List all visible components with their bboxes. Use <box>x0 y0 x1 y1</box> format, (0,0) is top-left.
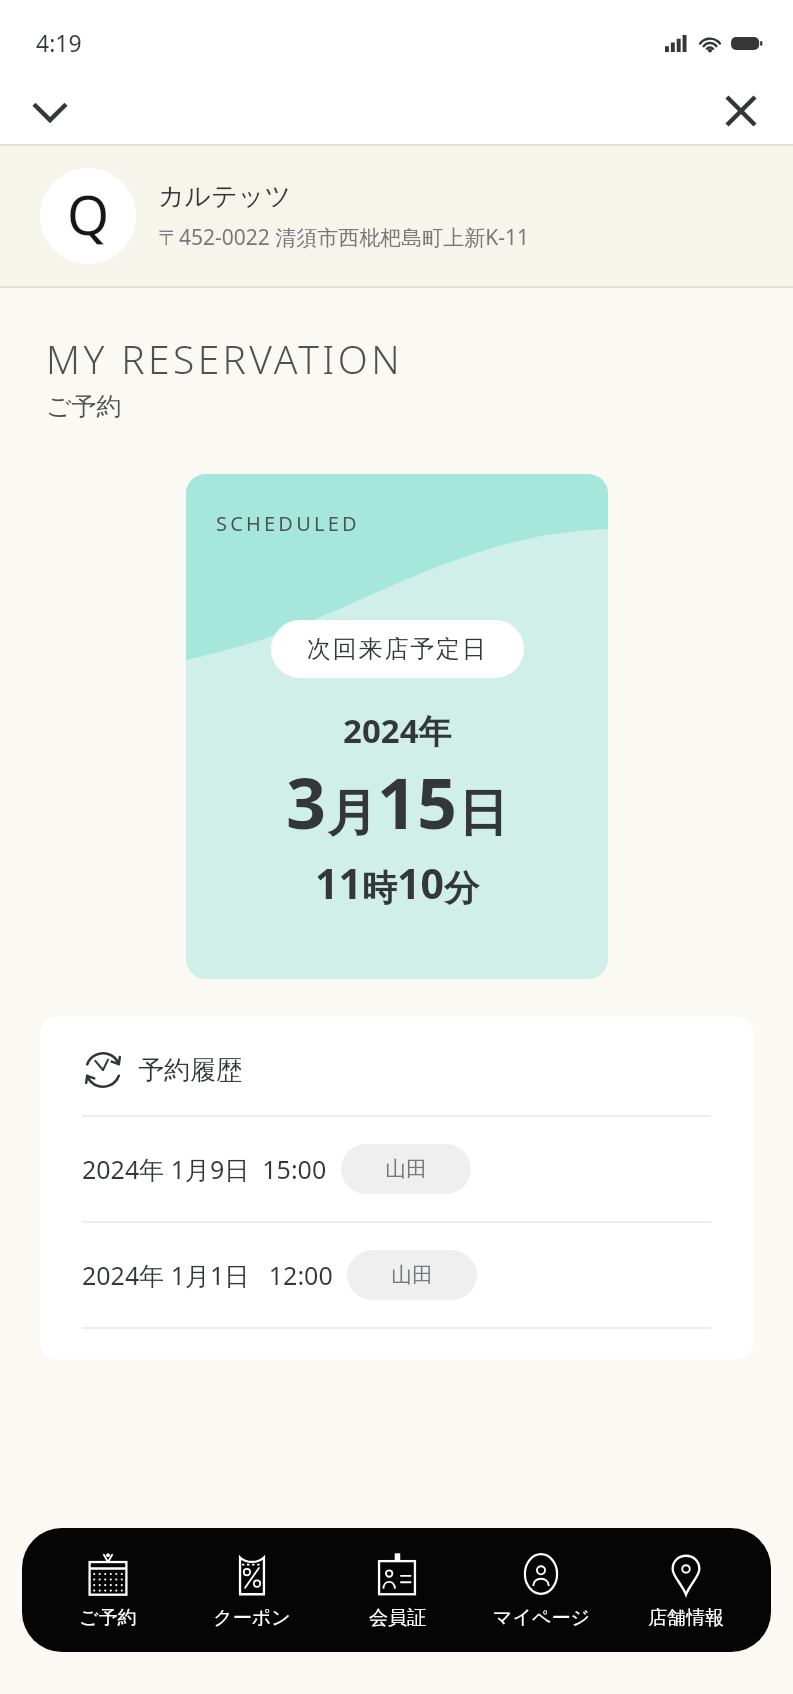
staticText: ご予約 <box>79 1606 137 1630</box>
staticText: ご予約 <box>46 391 122 422</box>
button[interactable]: 会員証 <box>330 1528 464 1652</box>
button[interactable]: ご予約 <box>41 1528 175 1652</box>
staticText: 3 <box>286 754 327 849</box>
staticText: 2024年 1月9日 15:00 <box>82 1152 327 1186</box>
button[interactable]: 店舗情報 <box>619 1528 753 1652</box>
staticText: MY RESERVATION <box>46 332 403 385</box>
staticText: 店舗情報 <box>648 1606 724 1630</box>
staticText: 月 <box>327 782 377 845</box>
staticText: Q <box>67 177 110 251</box>
staticText: 2024年 <box>343 708 452 753</box>
button[interactable]: クーポン <box>185 1528 319 1652</box>
button[interactable]: Q <box>0 146 793 286</box>
staticText: 日 <box>458 782 508 845</box>
staticText: 10 <box>397 855 444 911</box>
button[interactable]: 2024年 1月1日 12:00 <box>40 1223 753 1327</box>
staticText: 11 <box>315 855 362 911</box>
button[interactable]: Close <box>711 81 771 141</box>
staticText: カルテッツ <box>158 180 292 213</box>
staticText: 山田 <box>391 1262 433 1288</box>
staticText: マイページ <box>493 1606 590 1630</box>
button[interactable]: 予約履歴 <box>40 1017 753 1359</box>
staticText: 2024年 1月1日 12:00 <box>82 1258 333 1292</box>
staticText: 会員証 <box>369 1606 426 1630</box>
button[interactable]: マイページ <box>474 1528 608 1652</box>
staticText: 次回来店予定日 <box>307 634 488 664</box>
button[interactable]: SCHEDULED <box>186 474 608 979</box>
staticText: 予約履歴 <box>138 1054 242 1087</box>
button[interactable]: Collapse <box>20 81 80 141</box>
staticText: 4:19 <box>36 27 82 58</box>
staticText: 15 <box>377 754 458 849</box>
staticText: 時 <box>362 866 397 910</box>
staticText: SCHEDULED <box>216 510 360 537</box>
staticText: クーポン <box>213 1606 291 1630</box>
staticText: 〒452-0022 清須市西枇杷島町上新K-11 <box>158 223 530 252</box>
staticText: 山田 <box>385 1156 427 1182</box>
staticText: 分 <box>444 866 479 910</box>
button[interactable]: 2024年 1月9日 15:00 <box>40 1117 753 1221</box>
